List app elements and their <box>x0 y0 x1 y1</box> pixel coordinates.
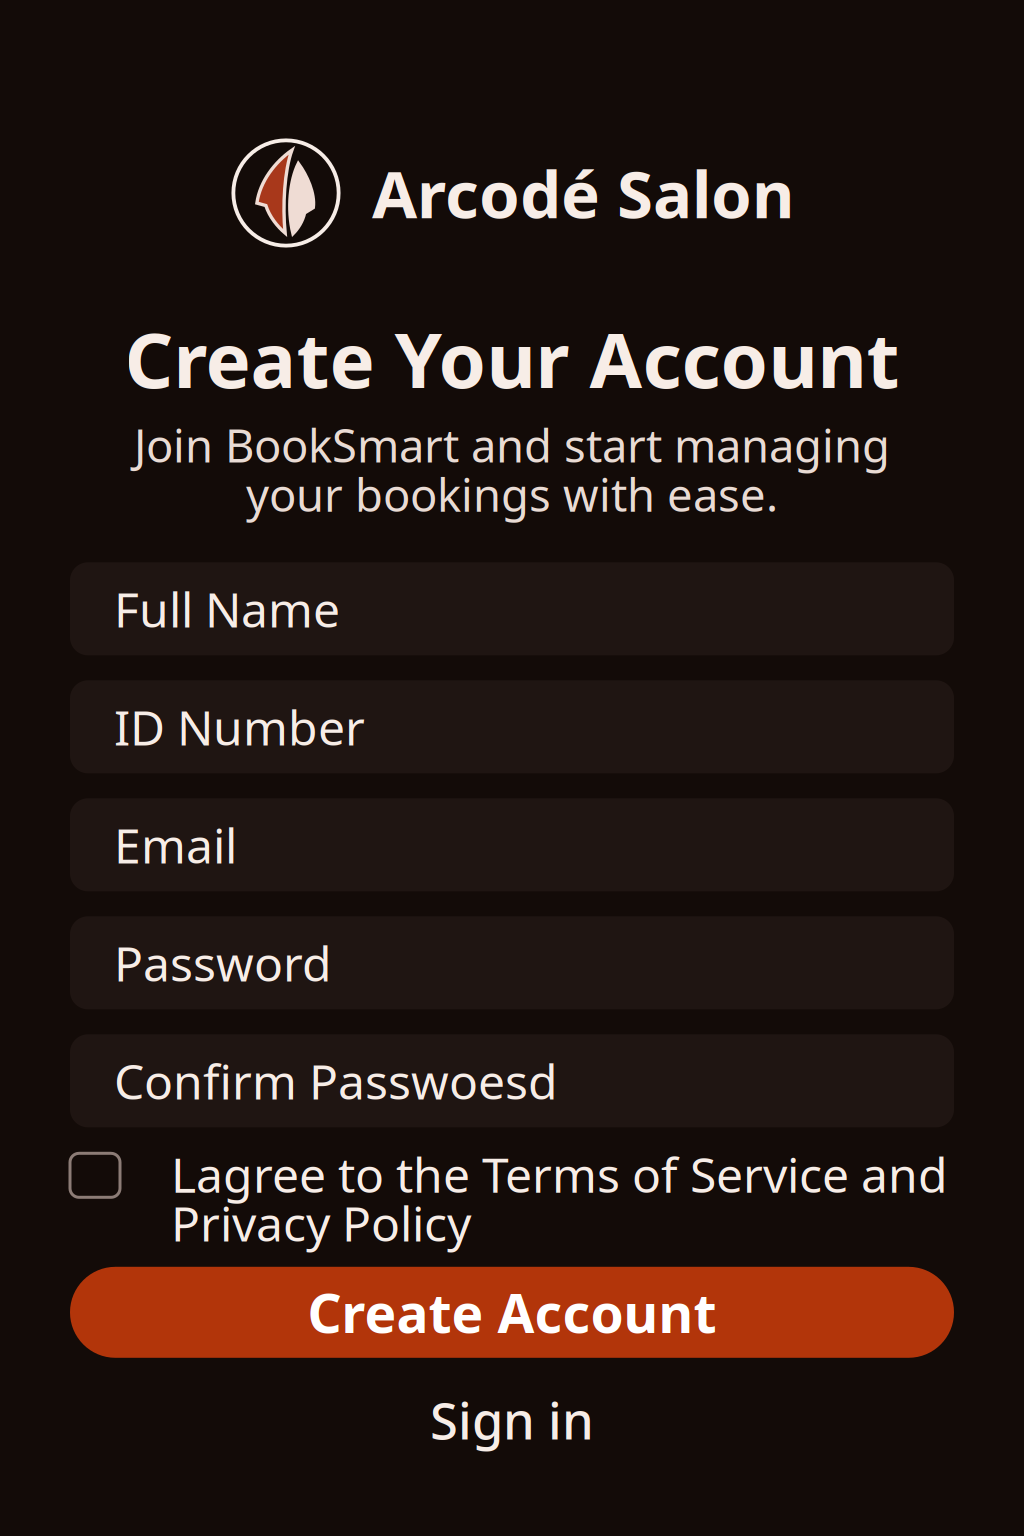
staticText: Sign in <box>430 1386 594 1453</box>
staticText: Lagree to the Terms of Service and <box>171 1142 948 1206</box>
button[interactable]: Password <box>70 916 954 1009</box>
button[interactable]: ID Number <box>70 680 954 773</box>
staticText: Password <box>114 931 332 995</box>
staticText: Arcodé Salon <box>372 150 794 236</box>
staticText: ID Number <box>114 695 365 759</box>
button[interactable]: Sign in <box>70 1387 954 1453</box>
staticText: Confirm Passwoesd <box>114 1049 558 1113</box>
button[interactable]: Create Account <box>70 1267 954 1358</box>
staticText: Create Account <box>307 1277 716 1348</box>
button[interactable]: Confirm Passwoesd <box>70 1034 954 1127</box>
staticText: your bookings with ease. <box>246 464 778 524</box>
staticText: Create Your Account <box>124 308 899 409</box>
button[interactable]: Email <box>70 798 954 891</box>
staticText: Email <box>114 813 237 877</box>
staticText: Join BookSmart and start managing <box>134 415 890 475</box>
staticText: Privacy Policy <box>171 1191 471 1255</box>
button[interactable]: Full Name <box>70 562 954 655</box>
button[interactable]: I agree to the Terms of Service and Priv… <box>70 1142 954 1255</box>
staticText: Full Name <box>114 577 340 641</box>
